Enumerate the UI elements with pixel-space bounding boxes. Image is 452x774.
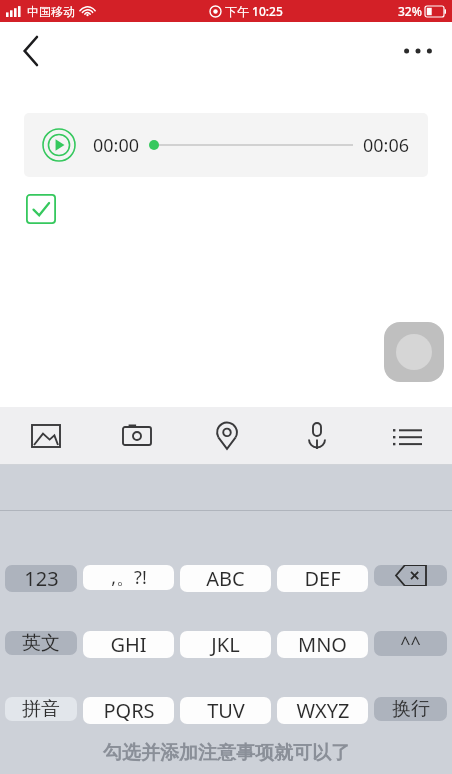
- button[interactable]: 拼音: [5, 697, 77, 721]
- button[interactable]: Checkbox checked: [26, 194, 56, 224]
- button[interactable]: Photos: [0, 407, 91, 465]
- button[interactable]: Camera: [91, 407, 182, 465]
- staticText: 下午 10:25: [225, 3, 283, 19]
- staticText: DEF: [304, 565, 341, 592]
- button[interactable]: Location: [182, 407, 272, 465]
- button[interactable]: PQRS: [83, 697, 174, 724]
- button[interactable]: JKL: [180, 631, 271, 658]
- staticText: JKL: [211, 631, 240, 658]
- button[interactable]: List: [362, 407, 452, 465]
- staticText: 00:06: [363, 133, 410, 158]
- staticText: ABC: [206, 565, 245, 592]
- staticText: 123: [24, 565, 59, 592]
- staticText: PQRS: [103, 697, 155, 724]
- staticText: ^^: [400, 631, 421, 656]
- staticText: 00:00: [93, 133, 140, 158]
- staticText: GHI: [110, 631, 147, 658]
- button[interactable]: Voice: [272, 407, 362, 465]
- staticText: 拼音: [22, 697, 60, 721]
- staticText: TUV: [207, 697, 245, 724]
- button[interactable]: More options: [394, 27, 442, 75]
- button[interactable]: 英文: [5, 631, 77, 655]
- staticText: 勾选并添加注意事项就可以了: [103, 741, 350, 765]
- button[interactable]: GHI: [83, 631, 174, 658]
- button[interactable]: 换行: [374, 697, 447, 721]
- button[interactable]: Assistive touch: [384, 322, 444, 382]
- staticText: MNO: [298, 631, 347, 658]
- button[interactable]: ,。?!: [83, 565, 174, 590]
- button[interactable]: TUV: [180, 697, 271, 724]
- staticText: 换行: [392, 697, 430, 721]
- button[interactable]: [374, 565, 447, 586]
- button[interactable]: ^^: [374, 631, 447, 656]
- staticText: 英文: [22, 631, 60, 655]
- staticText: ,。?!: [111, 565, 147, 590]
- staticText: 中国移动: [27, 4, 75, 19]
- button[interactable]: ABC: [180, 565, 271, 592]
- button[interactable]: 123: [5, 565, 77, 592]
- button[interactable]: 00:00: [24, 113, 428, 177]
- button[interactable]: MNO: [277, 631, 368, 658]
- button[interactable]: WXYZ: [277, 697, 368, 724]
- button[interactable]: Back: [8, 28, 54, 74]
- button[interactable]: DEF: [277, 565, 368, 592]
- staticText: 32%: [398, 3, 422, 19]
- staticText: WXYZ: [296, 697, 350, 724]
